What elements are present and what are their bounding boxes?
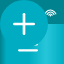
staticText: 9:41 bbox=[8, 5, 30, 20]
button[interactable]: Open navigation menu bbox=[4, 24, 52, 64]
button[interactable]: Compose new message bbox=[0, 0, 48, 48]
